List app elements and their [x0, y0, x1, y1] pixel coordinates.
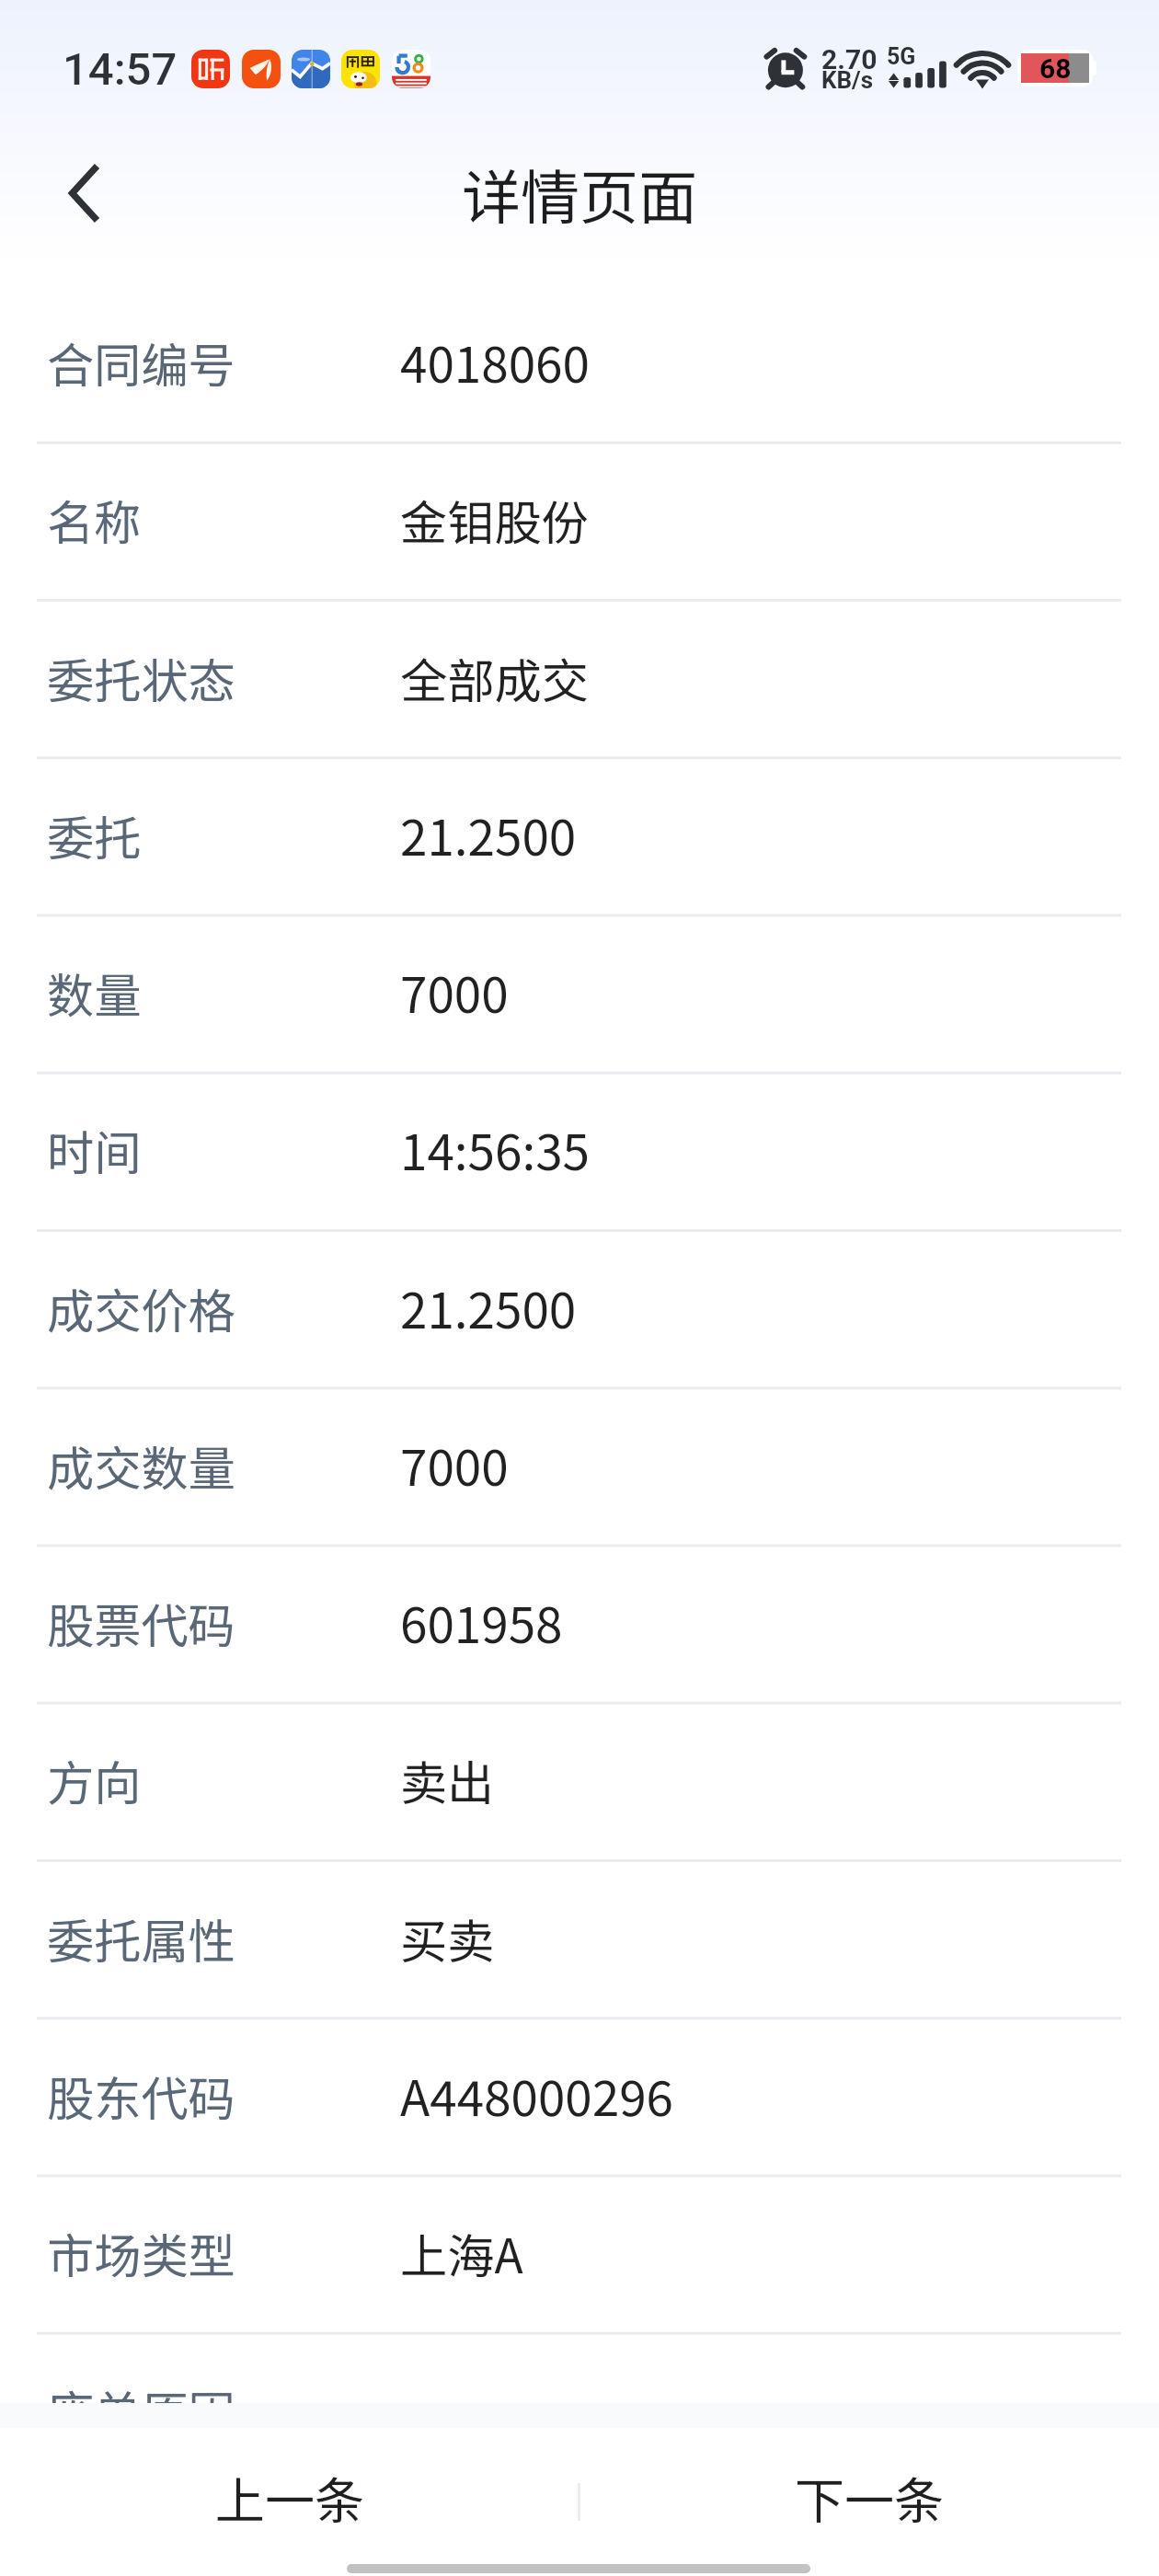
- staticText: 7000: [400, 957, 509, 1028]
- button[interactable]: 委托状态: [0, 601, 1159, 758]
- staticText: 详情页面: [462, 151, 697, 236]
- button[interactable]: Back: [39, 110, 131, 276]
- staticText: 7000: [400, 1430, 509, 1501]
- button[interactable]: 成交数量: [0, 1388, 1159, 1546]
- staticText: 4018060: [400, 327, 590, 397]
- button[interactable]: 股票代码: [0, 1546, 1159, 1703]
- staticText: 上一条: [215, 2461, 364, 2533]
- button[interactable]: 时间: [0, 1073, 1159, 1230]
- button[interactable]: 数量: [0, 915, 1159, 1073]
- staticText: 卖出: [400, 1746, 495, 1814]
- staticText: 委托属性: [47, 1904, 235, 1972]
- staticText: 2.70: [821, 43, 877, 75]
- staticText: 名称: [47, 486, 142, 554]
- button[interactable]: 名称: [0, 443, 1159, 600]
- staticText: 委托状态: [47, 644, 235, 712]
- staticText: 5G: [887, 43, 916, 70]
- staticText: 下一条: [795, 2461, 944, 2533]
- button[interactable]: 废单原因: [0, 2333, 1159, 2403]
- staticText: 市场类型: [47, 2219, 235, 2287]
- button[interactable]: 成交价格: [0, 1231, 1159, 1388]
- button[interactable]: 委托: [0, 758, 1159, 915]
- button[interactable]: 委托属性: [0, 1861, 1159, 2018]
- staticText: 全部成交: [400, 644, 589, 712]
- button[interactable]: 合同编号: [0, 285, 1159, 443]
- staticText: 上海A: [400, 2219, 523, 2287]
- staticText: 股东代码: [47, 2062, 235, 2130]
- staticText: 21.2500: [400, 799, 577, 870]
- staticText: 委托: [47, 801, 142, 869]
- staticText: 金钼股份: [400, 486, 589, 554]
- button[interactable]: 股东代码: [0, 2018, 1159, 2176]
- button[interactable]: 上一条: [0, 2428, 579, 2548]
- staticText: KB/s: [821, 66, 874, 94]
- staticText: 方向: [47, 1746, 142, 1814]
- staticText: 68: [1039, 52, 1072, 85]
- staticText: 成交数量: [47, 1432, 235, 1500]
- button[interactable]: 方向: [0, 1703, 1159, 1860]
- staticText: 买卖: [400, 1904, 495, 1972]
- staticText: 21.2500: [400, 1272, 577, 1343]
- staticText: 成交价格: [47, 1274, 235, 1342]
- staticText: 14:56:35: [400, 1114, 590, 1185]
- staticText: 合同编号: [47, 328, 235, 397]
- button[interactable]: 下一条: [579, 2428, 1159, 2548]
- button[interactable]: 市场类型: [0, 2176, 1159, 2333]
- staticText: 废单原因: [47, 2376, 235, 2403]
- staticText: A448000296: [400, 2060, 673, 2131]
- staticText: 时间: [47, 1116, 142, 1184]
- staticText: 股票代码: [47, 1589, 235, 1657]
- staticText: 数量: [47, 959, 142, 1027]
- staticText: 601958: [400, 1587, 563, 1658]
- staticText: 14:57: [63, 43, 178, 96]
